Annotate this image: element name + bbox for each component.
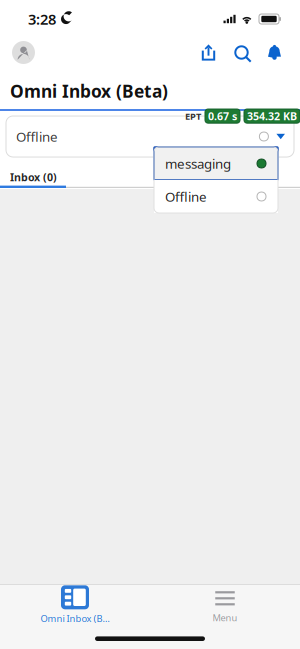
staticText: Menu <box>212 611 237 624</box>
staticText: 354.32 KB <box>247 109 297 123</box>
staticText: Omni Inbox (B… <box>40 612 109 625</box>
button[interactable]: Search <box>227 39 256 65</box>
button[interactable]: Account <box>0 38 41 67</box>
staticText: Offline <box>165 188 207 205</box>
staticText: Omni Inbox (Beta) <box>10 79 168 102</box>
staticText: EPT <box>185 110 201 122</box>
staticText: Offline <box>16 128 58 145</box>
button[interactable]: Notifications <box>260 39 289 65</box>
staticText: 3:28 <box>28 9 56 29</box>
button[interactable]: Menu <box>150 587 300 623</box>
button[interactable]: Offline <box>154 180 278 213</box>
button[interactable]: Share <box>194 39 223 65</box>
button[interactable]: Omni Inbox (B… <box>0 587 150 623</box>
staticText: messaging <box>165 155 231 172</box>
staticText: Inbox (0) <box>10 170 57 184</box>
button[interactable]: Inbox (0) <box>0 166 67 188</box>
staticText: 0.67 s <box>208 109 237 123</box>
button[interactable]: Offline <box>6 116 294 157</box>
button[interactable]: messaging <box>154 147 278 180</box>
